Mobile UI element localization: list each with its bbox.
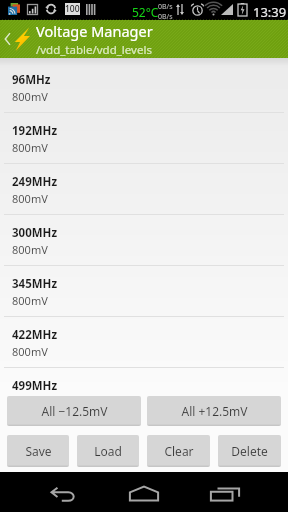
staticText: 800mV — [12, 293, 48, 308]
staticText: Save — [25, 443, 52, 459]
staticText: All +12.5mV — [181, 403, 248, 419]
staticText: 0B/s — [158, 2, 173, 12]
staticText: 0B/s — [158, 12, 173, 22]
staticText: 249MHz — [12, 174, 58, 190]
staticText: Clear — [164, 443, 194, 459]
staticText: Voltage Manager — [36, 21, 153, 41]
staticText: 345MHz — [12, 276, 58, 292]
staticText: 192MHz — [12, 123, 58, 139]
staticText: 800mV — [12, 89, 48, 104]
staticText: Load — [94, 443, 122, 459]
staticText: 800mV — [12, 191, 48, 206]
button[interactable]: All +12.5mV — [147, 396, 281, 426]
staticText: Delete — [231, 443, 268, 459]
button[interactable]: 249MHz — [0, 164, 288, 214]
button[interactable]: 345MHz — [0, 266, 288, 316]
button[interactable]: Back — [39, 472, 87, 512]
staticText: 13:39 — [253, 3, 287, 21]
staticText: All −12.5mV — [41, 403, 108, 419]
button[interactable]: All −12.5mV — [7, 396, 141, 426]
staticText: 800mV — [12, 242, 48, 257]
staticText: 100 — [65, 3, 80, 15]
button[interactable]: Delete — [218, 435, 281, 467]
staticText: 422MHz — [12, 327, 58, 343]
button[interactable]: Navigate up — [0, 20, 288, 58]
staticText: 800mV — [12, 344, 48, 359]
staticText: 96MHz — [12, 72, 51, 88]
button[interactable]: 300MHz — [0, 215, 288, 265]
button[interactable]: Clear — [147, 435, 210, 467]
staticText: 52°C — [132, 4, 159, 20]
button[interactable]: 96MHz — [0, 58, 288, 112]
button[interactable]: Save — [7, 435, 69, 467]
staticText: 800mV — [12, 140, 48, 155]
button[interactable]: Load — [77, 435, 139, 467]
staticText: 300MHz — [12, 225, 58, 241]
button[interactable]: Recent apps — [201, 472, 249, 512]
staticText: /vdd_table/vdd_levels — [36, 42, 152, 58]
button[interactable]: 499MHz — [0, 368, 288, 392]
button[interactable]: 422MHz — [0, 317, 288, 367]
button[interactable]: 192MHz — [0, 113, 288, 163]
staticText: 499MHz — [12, 378, 58, 392]
button[interactable]: Home — [120, 472, 168, 512]
